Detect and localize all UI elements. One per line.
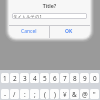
staticText: : — [24, 90, 26, 99]
staticText: 9 — [83, 74, 87, 83]
button[interactable]: OK — [50, 26, 90, 38]
button[interactable]: 4 — [30, 73, 39, 83]
button[interactable]: ( — [40, 89, 49, 99]
staticText: 4 — [33, 74, 37, 83]
staticText: & — [72, 90, 77, 99]
staticText: 3 — [23, 74, 27, 83]
button[interactable]: @ — [80, 89, 89, 99]
button[interactable]: 5 — [40, 73, 49, 83]
button[interactable]: : — [20, 89, 29, 99]
staticText: Title? — [9, 2, 90, 9]
button[interactable]: " — [90, 89, 99, 99]
button[interactable]: タイトルその1 — [12, 13, 87, 19]
staticText: / — [13, 90, 16, 99]
button[interactable]: - — [1, 89, 9, 99]
button[interactable]: ¥ — [60, 89, 69, 99]
staticText: ¥ — [63, 90, 67, 99]
staticText: 2 — [13, 74, 17, 83]
staticText: 5 — [43, 74, 47, 83]
button[interactable]: 2 — [10, 73, 19, 83]
button[interactable]: / — [10, 89, 19, 99]
staticText: 8 — [73, 74, 77, 83]
staticText: タイトルその1 — [13, 13, 42, 19]
staticText: 7 — [63, 74, 67, 83]
button[interactable]: 3 — [20, 73, 29, 83]
button[interactable]: 7 — [60, 73, 69, 83]
staticText: - — [4, 90, 7, 99]
button[interactable]: 0 — [90, 73, 99, 83]
staticText: Cancel — [21, 28, 37, 35]
button[interactable]: Cancel — [9, 26, 49, 38]
button[interactable]: & — [70, 89, 79, 99]
staticText: @ — [82, 90, 88, 99]
staticText: " — [93, 90, 96, 99]
staticText: ) — [54, 90, 56, 99]
staticText: ; — [34, 90, 36, 99]
button[interactable]: 9 — [80, 73, 89, 83]
button[interactable]: 1 — [1, 73, 9, 83]
button[interactable]: ; — [30, 89, 39, 99]
button[interactable]: ) — [50, 89, 59, 99]
staticText: ( — [44, 90, 46, 99]
button[interactable]: 8 — [70, 73, 79, 83]
button[interactable]: 6 — [50, 73, 59, 83]
staticText: 6 — [53, 74, 57, 83]
staticText: OK — [65, 28, 73, 35]
staticText: 0 — [93, 74, 97, 83]
staticText: 1 — [3, 74, 7, 83]
